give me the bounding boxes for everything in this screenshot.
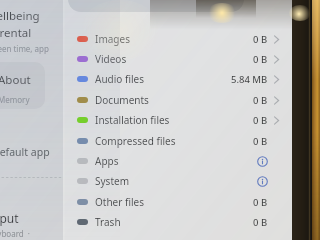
button[interactable]: System (66, 171, 284, 191)
button[interactable]: Videos (66, 49, 284, 69)
staticText: Default app settings (0, 145, 55, 159)
staticText: System (95, 174, 129, 188)
staticText: Trash (95, 215, 121, 229)
button[interactable]: Trash (66, 212, 284, 232)
button[interactable]: Audio files (66, 69, 284, 89)
button[interactable]: Documents (66, 90, 284, 110)
staticText: 0 B (253, 33, 268, 46)
button[interactable]: Installation files (66, 110, 284, 130)
button[interactable]: Default app settings (0, 143, 45, 161)
staticText: About device (0, 72, 45, 88)
staticText: Images (95, 32, 130, 46)
staticText: Installation files (95, 113, 170, 127)
staticText: 0 B (253, 216, 268, 229)
staticText: Videos (95, 52, 127, 66)
other: More information (257, 176, 268, 187)
staticText: Apps (95, 154, 119, 168)
staticText: parental controls (0, 25, 49, 41)
staticText: 5.84 MB (231, 73, 268, 86)
button[interactable] (68, 0, 244, 12)
button[interactable]: About device (0, 62, 45, 109)
staticText: Memory (0, 94, 30, 105)
staticText: Wellbeing and (0, 8, 49, 24)
button[interactable]: Compressed files (66, 131, 284, 151)
staticText: 0 B (253, 53, 268, 66)
staticText: 0 B (253, 196, 268, 209)
staticText: 0 B (253, 114, 268, 127)
staticText: Compressed files (95, 134, 176, 148)
other: More information (257, 156, 268, 167)
staticText: Audio files (95, 72, 144, 86)
staticText: Keyboard · (0, 228, 30, 239)
staticText: 0 B (253, 135, 268, 148)
staticText: Screen time, app timers (0, 43, 49, 54)
button[interactable]: Other files (66, 192, 284, 212)
staticText: Other files (95, 195, 144, 209)
button[interactable]: Images (66, 29, 284, 49)
staticText: Input (0, 210, 19, 226)
button[interactable]: Apps (66, 151, 284, 171)
staticText: 0 B (253, 94, 268, 107)
staticText: Documents (95, 93, 149, 107)
